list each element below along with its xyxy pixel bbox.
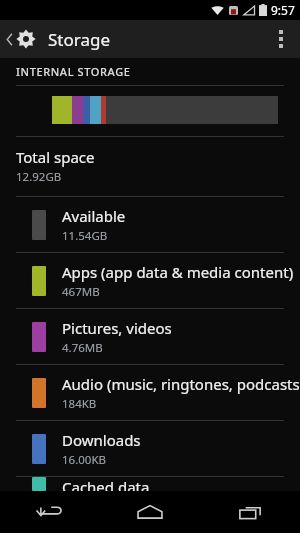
button[interactable]: Back bbox=[0, 491, 100, 533]
button[interactable]: Home bbox=[100, 491, 200, 533]
button[interactable]: More options bbox=[262, 20, 300, 58]
button[interactable]: Navigate up, Settings bbox=[0, 23, 40, 55]
staticText: Storage bbox=[48, 28, 111, 51]
button[interactable]: Recent apps bbox=[200, 491, 300, 533]
staticText: Available bbox=[62, 206, 126, 226]
button[interactable]: Total space bbox=[0, 137, 300, 196]
button[interactable]: Pictures, videos bbox=[0, 309, 300, 364]
staticText: INTERNAL STORAGE bbox=[16, 64, 131, 79]
staticText: 11.54GB bbox=[62, 228, 108, 244]
staticText: 12.92GB bbox=[16, 169, 62, 185]
staticText: 4.76MB bbox=[62, 340, 103, 356]
staticText: Downloads bbox=[62, 430, 141, 450]
staticText: Total space bbox=[16, 147, 95, 167]
staticText: Audio (music, ringtones, podcasts) bbox=[62, 374, 300, 394]
button[interactable]: Audio (music, ringtones, podcasts) bbox=[0, 365, 300, 420]
staticText: 467MB bbox=[62, 284, 100, 300]
staticText: Apps (app data & media content) bbox=[62, 262, 294, 282]
button[interactable]: Downloads bbox=[0, 421, 300, 476]
staticText: Cached data bbox=[62, 477, 150, 491]
staticText: Pictures, videos bbox=[62, 318, 172, 338]
staticText: 16.00KB bbox=[62, 452, 106, 468]
staticText: 9:57 bbox=[271, 2, 295, 18]
button[interactable]: Available bbox=[0, 197, 300, 252]
staticText: 184KB bbox=[62, 396, 97, 412]
button[interactable]: Apps (app data & media content) bbox=[0, 253, 300, 308]
button[interactable]: Cached data bbox=[0, 477, 300, 491]
